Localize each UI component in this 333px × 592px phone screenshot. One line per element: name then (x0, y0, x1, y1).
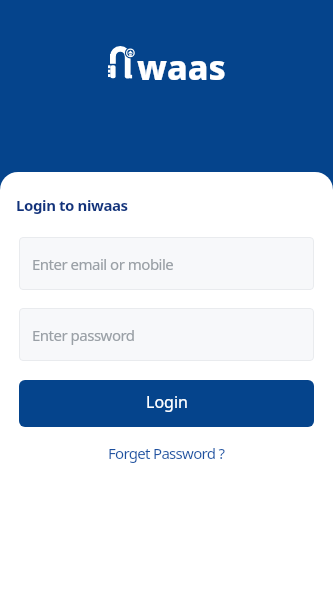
staticText: Enter password (32, 325, 135, 345)
staticText: waas (137, 44, 226, 90)
staticText: Login (146, 391, 188, 413)
button[interactable]: Enter email or mobile (19, 237, 314, 290)
staticText: Enter email or mobile (32, 254, 174, 274)
staticText: Login to niwaas (16, 195, 128, 215)
staticText: Forget Password ? (108, 443, 225, 463)
button[interactable]: Enter password (19, 308, 314, 361)
button[interactable]: Forget Password ? (104, 439, 229, 467)
button[interactable]: Login (19, 380, 314, 427)
